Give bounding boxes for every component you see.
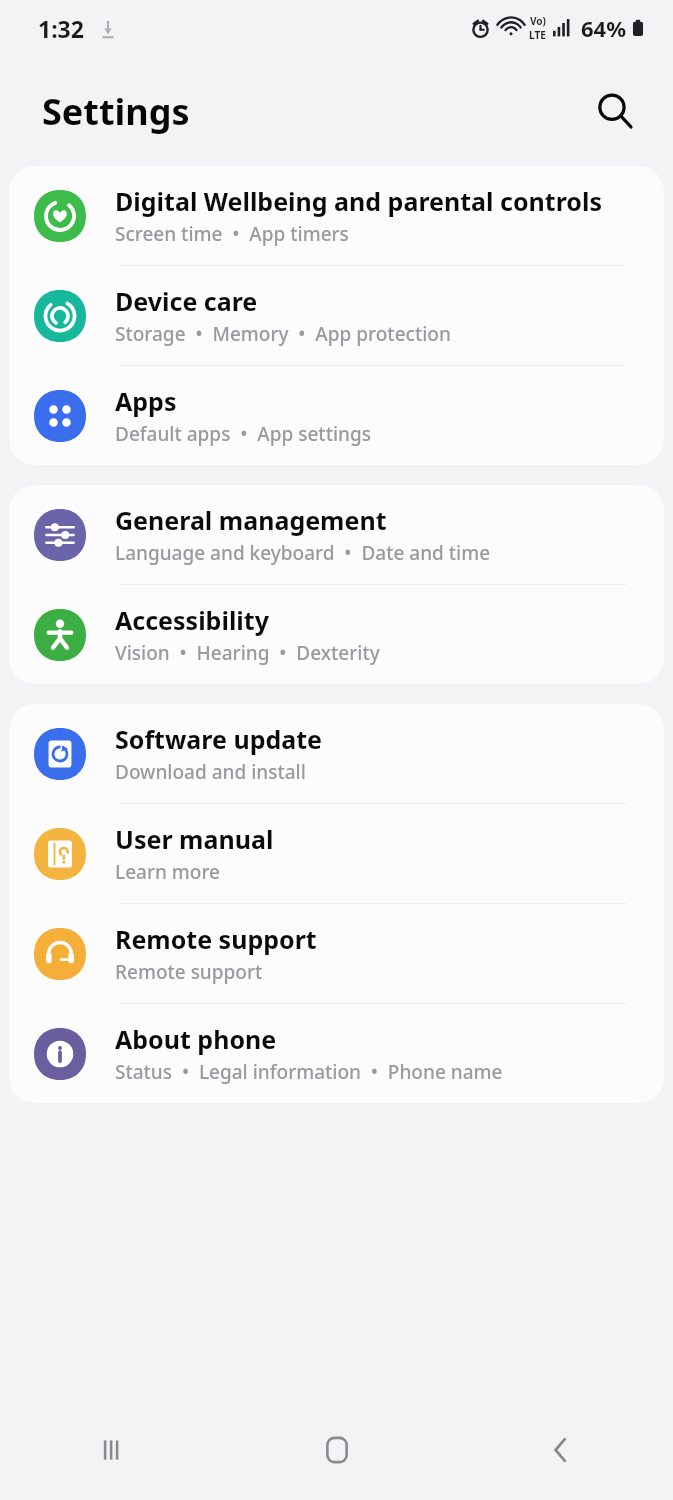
staticText: Language and keyboard • Date and time bbox=[115, 540, 491, 566]
button[interactable]: Apps bbox=[9, 366, 664, 465]
button[interactable]: Home bbox=[297, 1410, 377, 1490]
staticText: LTE bbox=[529, 28, 546, 42]
staticText: Download and install bbox=[115, 759, 306, 785]
button[interactable]: Recents bbox=[72, 1410, 152, 1490]
button[interactable]: Back bbox=[521, 1410, 601, 1490]
staticText: Vo) bbox=[530, 14, 546, 28]
staticText: Screen time • App timers bbox=[115, 221, 349, 247]
staticText: About phone bbox=[115, 1022, 277, 1056]
button[interactable]: Device care bbox=[9, 266, 664, 366]
staticText: Status • Legal information • Phone name bbox=[115, 1059, 503, 1085]
staticText: Apps bbox=[115, 384, 177, 418]
button[interactable]: General management bbox=[9, 485, 664, 585]
staticText: Storage • Memory • App protection bbox=[115, 321, 451, 347]
button[interactable]: Accessibility bbox=[9, 585, 664, 684]
staticText: 1:32 bbox=[38, 13, 84, 44]
button[interactable]: User manual bbox=[9, 804, 664, 904]
staticText: Device care bbox=[115, 284, 258, 318]
staticText: Software update bbox=[115, 722, 323, 756]
button[interactable]: Search bbox=[587, 83, 643, 139]
staticText: Remote support bbox=[115, 959, 263, 985]
staticText: Accessibility bbox=[115, 603, 269, 637]
button[interactable]: Digital Wellbeing and parental controls bbox=[9, 166, 664, 266]
button[interactable]: Software update bbox=[9, 704, 664, 804]
staticText: 64% bbox=[581, 13, 627, 43]
staticText: General management bbox=[115, 503, 387, 537]
button[interactable]: About phone bbox=[9, 1004, 664, 1103]
staticText: Digital Wellbeing and parental controls bbox=[115, 184, 602, 218]
staticText: Remote support bbox=[115, 922, 317, 956]
staticText: Default apps • App settings bbox=[115, 421, 371, 447]
staticText: User manual bbox=[115, 822, 274, 856]
staticText: Learn more bbox=[115, 859, 220, 885]
staticText: Vision • Hearing • Dexterity bbox=[115, 640, 380, 666]
staticText: Settings bbox=[42, 87, 190, 136]
button[interactable]: Remote support bbox=[9, 904, 664, 1004]
